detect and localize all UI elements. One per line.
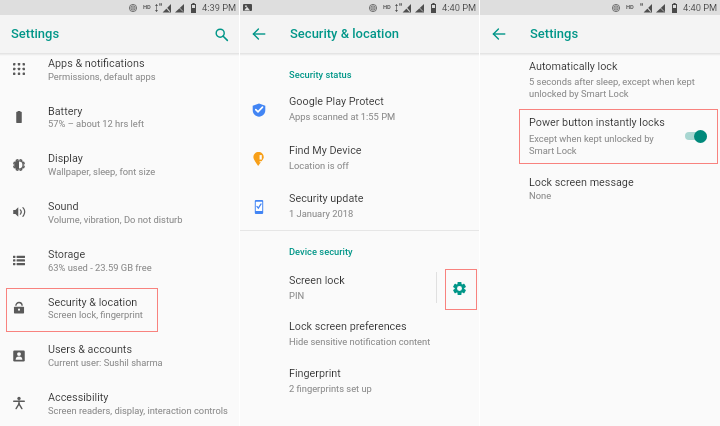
staticText: Fingerprint xyxy=(289,367,341,380)
button[interactable] xyxy=(0,335,239,379)
staticText: Device security xyxy=(289,246,353,257)
button[interactable] xyxy=(480,168,720,206)
staticText: Lock screen preferences xyxy=(289,320,407,333)
staticText: HD xyxy=(626,4,634,11)
staticText: Screen lock xyxy=(289,274,345,287)
staticText: None xyxy=(529,190,552,201)
staticText: 4:39 PM xyxy=(202,2,237,13)
staticText: Settings xyxy=(11,26,60,41)
staticText: 2 fingerprints set up xyxy=(289,383,372,394)
button[interactable] xyxy=(0,239,239,283)
button[interactable] xyxy=(0,96,239,140)
staticText: Display xyxy=(48,152,83,165)
staticText: Apps & notifications xyxy=(48,57,145,70)
staticText: Hide sensitive notification content xyxy=(289,336,431,347)
staticText: unlocked by Smart Lock xyxy=(529,88,629,99)
button[interactable] xyxy=(0,191,239,235)
button[interactable] xyxy=(0,382,239,426)
staticText: Current user: Sushil sharma xyxy=(48,357,163,368)
staticText: 63% used - 23.59 GB free xyxy=(48,262,152,273)
button[interactable] xyxy=(0,287,239,331)
staticText: Screen lock, fingerprint xyxy=(48,309,143,320)
staticText: Location is off xyxy=(289,160,349,171)
staticText: Sound xyxy=(48,200,79,213)
staticText: Battery xyxy=(48,105,83,118)
button[interactable]: Screen lock settings xyxy=(445,269,477,310)
button[interactable] xyxy=(480,53,720,103)
button[interactable] xyxy=(519,109,718,164)
button[interactable] xyxy=(240,87,479,131)
staticText: HD xyxy=(383,4,391,11)
staticText: Power button instantly locks xyxy=(529,116,665,129)
staticText: Except when kept unlocked by xyxy=(529,133,654,144)
staticText: Security update xyxy=(289,192,364,205)
button[interactable] xyxy=(240,135,479,179)
staticText: Security & location xyxy=(290,26,400,41)
staticText: Storage xyxy=(48,248,86,261)
button[interactable]: Search xyxy=(207,20,235,48)
staticText: Volume, vibration, Do not disturb xyxy=(48,214,183,225)
staticText: 5 seconds after sleep, except when kept xyxy=(529,76,695,87)
button[interactable] xyxy=(0,48,239,92)
staticText: Users & accounts xyxy=(48,343,132,356)
staticText: Wallpaper, sleep, font size xyxy=(48,166,156,177)
staticText: Screen readers, display, interaction con… xyxy=(48,405,228,416)
staticText: Automatically lock xyxy=(529,60,618,73)
staticText: Security & location xyxy=(48,296,138,309)
staticText: Smart Lock xyxy=(529,145,577,156)
button[interactable]: Back xyxy=(246,21,272,47)
staticText: Accessibility xyxy=(48,391,109,404)
button[interactable] xyxy=(0,144,239,188)
staticText: 4:40 PM xyxy=(442,2,477,13)
staticText: 1 January 2018 xyxy=(289,208,354,219)
button[interactable]: Back xyxy=(486,21,512,47)
staticText: PIN xyxy=(289,290,305,301)
staticText: Permissions, default apps xyxy=(48,71,156,82)
button[interactable] xyxy=(240,359,479,401)
staticText: 4:40 PM xyxy=(683,2,718,13)
staticText: Google Play Protect xyxy=(289,95,384,108)
staticText: Lock screen message xyxy=(529,176,634,189)
staticText: 57% – about 12 hrs left xyxy=(48,118,145,129)
button[interactable] xyxy=(240,266,479,308)
staticText: Find My Device xyxy=(289,144,362,157)
staticText: Security status xyxy=(289,69,352,80)
staticText: Apps scanned at 1:55 PM xyxy=(289,111,396,122)
staticText: Settings xyxy=(530,26,579,41)
staticText: HD xyxy=(143,4,151,11)
button[interactable] xyxy=(240,312,479,354)
button[interactable] xyxy=(240,183,479,227)
